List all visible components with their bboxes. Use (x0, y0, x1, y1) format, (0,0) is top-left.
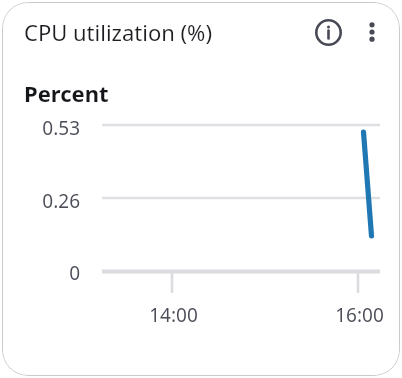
staticText: 16:00 (335, 302, 384, 328)
staticText: 0 (69, 260, 80, 286)
staticText: 0.26 (42, 188, 80, 214)
button[interactable]: More options (350, 10, 394, 54)
staticText: CPU utilization (%) (24, 17, 212, 47)
staticText: 14:00 (149, 302, 198, 328)
button[interactable]: Info (306, 10, 350, 54)
staticText: 0.53 (42, 115, 80, 141)
staticText: Percent (24, 78, 109, 108)
